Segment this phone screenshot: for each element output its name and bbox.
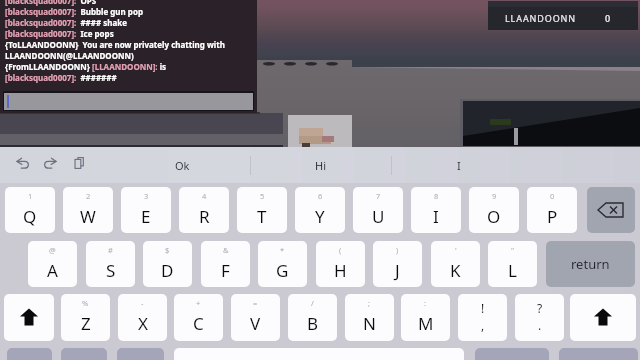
- button[interactable]: 0: [527, 187, 577, 233]
- button[interactable]: ?: [515, 294, 564, 341]
- staticText: 6: [318, 191, 323, 201]
- staticText: :: [424, 298, 427, 308]
- button[interactable]: Paste: [70, 154, 88, 172]
- staticText: R: [199, 205, 210, 228]
- button[interactable]: ): [373, 241, 422, 287]
- button[interactable]: (: [316, 241, 365, 287]
- staticText: LLAANDOONN: [505, 12, 577, 24]
- staticText: E: [141, 205, 151, 228]
- button[interactable]: 7: [353, 187, 403, 233]
- button[interactable]: +: [174, 294, 223, 341]
- button[interactable]: Numbers: [7, 348, 52, 360]
- staticText: M: [418, 312, 434, 335]
- button[interactable]: 8: [411, 187, 461, 233]
- button[interactable]: %: [61, 294, 110, 341]
- button[interactable]: *: [258, 241, 307, 287]
- button[interactable]: Shift: [570, 294, 636, 341]
- staticText: 1: [28, 191, 33, 201]
- button[interactable]: Shift: [4, 294, 54, 341]
- staticText: I: [457, 158, 461, 173]
- button[interactable]: Redo: [41, 154, 59, 172]
- staticText: 2: [86, 191, 91, 201]
- staticText: ,: [481, 317, 485, 333]
- staticText: +: [196, 298, 201, 308]
- button[interactable]: ;: [345, 294, 394, 341]
- staticText: {ToLLAANDOONN} You are now privately cha…: [5, 39, 225, 50]
- staticText: LLAANDOONN(@LLAANDOONN): [5, 50, 134, 61]
- staticText: X: [138, 312, 148, 335]
- button[interactable]: &: [201, 241, 250, 287]
- staticText: 9: [492, 191, 497, 201]
- staticText: Ok: [175, 158, 190, 173]
- button[interactable]: Hi: [270, 147, 370, 183]
- staticText: N: [363, 312, 376, 335]
- staticText: [blacksquad0007]: #### shake: [5, 17, 127, 28]
- staticText: @: [49, 245, 56, 255]
- button[interactable]: return: [546, 241, 635, 287]
- staticText: Y: [315, 205, 325, 228]
- staticText: =: [253, 298, 258, 308]
- button[interactable]: Numbers: [475, 348, 549, 360]
- button[interactable]: Hide keyboard: [559, 348, 638, 360]
- button[interactable]: Microphone: [117, 348, 164, 360]
- staticText: 3: [144, 191, 149, 201]
- button[interactable]: #: [86, 241, 135, 287]
- button[interactable]: 2: [63, 187, 113, 233]
- button[interactable]: I: [409, 147, 509, 183]
- staticText: 0: [605, 12, 611, 24]
- staticText: J: [395, 259, 400, 282]
- staticText: [blacksquad0007]: Ice pops: [5, 28, 114, 39]
- staticText: $: [165, 245, 170, 255]
- staticText: (: [339, 245, 342, 255]
- button[interactable]: -: [118, 294, 167, 341]
- button[interactable]: Ok: [132, 147, 232, 183]
- button[interactable]: 1: [5, 187, 55, 233]
- staticText: ?: [537, 300, 543, 316]
- staticText: K: [450, 259, 461, 282]
- staticText: [blacksquad0007]: OPS: [5, 0, 97, 6]
- button[interactable]: Undo: [14, 154, 32, 172]
- button[interactable]: 4: [179, 187, 229, 233]
- button[interactable]: 9: [469, 187, 519, 233]
- button[interactable]: ": [488, 241, 537, 287]
- staticText: H: [334, 259, 347, 282]
- button[interactable]: 3: [121, 187, 171, 233]
- staticText: 5: [260, 191, 265, 201]
- staticText: 8: [434, 191, 439, 201]
- staticText: *: [280, 245, 285, 255]
- staticText: [blacksquad0007]: Bubble gun pop: [5, 6, 143, 17]
- button[interactable]: LLAANDOONN: [488, 1, 638, 30]
- staticText: -: [141, 298, 144, 308]
- staticText: P: [547, 205, 558, 228]
- staticText: B: [307, 312, 319, 335]
- staticText: Z: [81, 312, 91, 335]
- staticText: {FromLLAANDOONN} [LLAANDOONN]: is: [5, 61, 167, 72]
- button[interactable]: @: [28, 241, 77, 287]
- staticText: C: [193, 312, 204, 335]
- staticText: return: [571, 255, 610, 273]
- staticText: ): [396, 245, 399, 255]
- staticText: Q: [23, 205, 37, 228]
- button[interactable]: 6: [295, 187, 345, 233]
- staticText: ;: [368, 298, 371, 308]
- button[interactable]: Backspace: [587, 187, 635, 233]
- button[interactable]: 5: [237, 187, 287, 233]
- staticText: 7: [376, 191, 381, 201]
- button[interactable]: $: [143, 241, 192, 287]
- staticText: T: [257, 205, 267, 228]
- button[interactable]: :: [401, 294, 450, 341]
- button[interactable]: Emoji: [61, 348, 107, 360]
- staticText: L: [508, 259, 517, 282]
- staticText: [blacksquad0007]: #######: [5, 72, 117, 83]
- staticText: U: [372, 205, 385, 228]
- button[interactable]: ': [431, 241, 480, 287]
- staticText: #: [108, 245, 113, 255]
- staticText: G: [276, 259, 289, 282]
- staticText: A: [47, 259, 58, 282]
- button[interactable]: =: [231, 294, 280, 341]
- staticText: .: [538, 317, 542, 333]
- staticText: W: [80, 205, 96, 228]
- button[interactable]: !: [458, 294, 507, 341]
- button[interactable]: /: [288, 294, 337, 341]
